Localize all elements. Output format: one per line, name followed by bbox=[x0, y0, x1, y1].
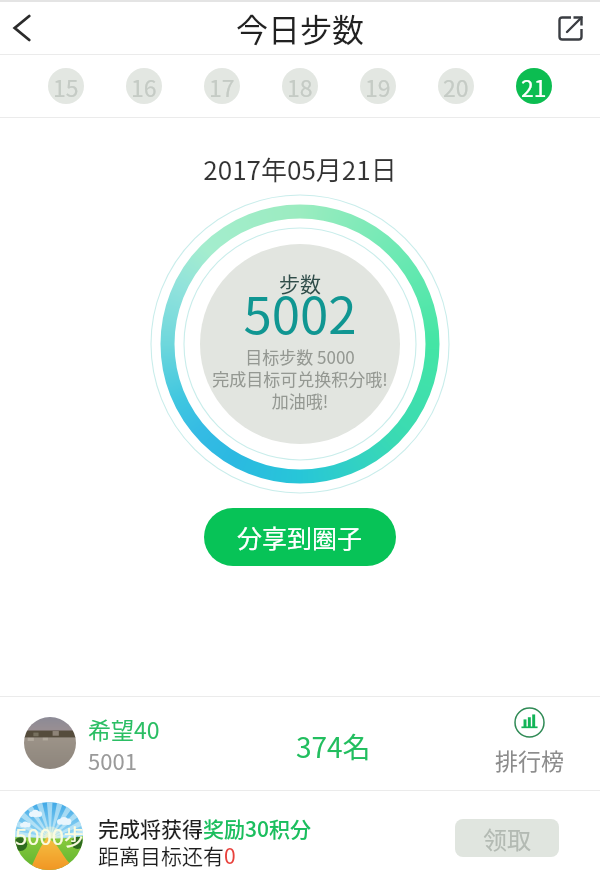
staticText: 2017年05月21日 bbox=[0, 150, 600, 188]
staticText: 5000步 bbox=[15, 819, 83, 851]
staticText: 距离目标还有0 bbox=[98, 840, 236, 870]
staticText: 领取 bbox=[483, 821, 531, 856]
staticText: 374名 bbox=[296, 726, 371, 767]
staticText: 19 bbox=[365, 70, 391, 103]
button[interactable]: 20 bbox=[438, 68, 474, 104]
button[interactable]: Share bbox=[543, 2, 597, 54]
button[interactable]: 19 bbox=[360, 68, 396, 104]
staticText: 排行榜 bbox=[495, 743, 564, 776]
staticText: 完成将获得奖励30积分 bbox=[98, 813, 311, 843]
button[interactable]: 18 bbox=[282, 68, 318, 104]
button[interactable]: 希望40 bbox=[0, 697, 600, 790]
staticText: 15 bbox=[53, 70, 79, 103]
button[interactable]: 15 bbox=[48, 68, 84, 104]
button[interactable]: 领取 bbox=[455, 819, 559, 857]
staticText: 今日步数 bbox=[236, 5, 365, 51]
staticText: 16 bbox=[131, 70, 157, 103]
staticText: 21 bbox=[521, 70, 547, 103]
button[interactable]: 分享到圈子 bbox=[204, 508, 396, 566]
staticText: 20 bbox=[443, 70, 469, 103]
staticText: 希望40 bbox=[88, 712, 160, 745]
staticText: 分享到圈子 bbox=[237, 519, 363, 555]
staticText: 17 bbox=[209, 70, 235, 103]
staticText: 5002 bbox=[140, 275, 460, 349]
button[interactable]: 16 bbox=[126, 68, 162, 104]
button[interactable]: Back bbox=[0, 2, 49, 54]
button[interactable]: 17 bbox=[204, 68, 240, 104]
button[interactable]: 21 bbox=[516, 68, 552, 104]
staticText: 5001 bbox=[88, 744, 137, 776]
staticText: 步数 bbox=[140, 268, 460, 298]
staticText: 18 bbox=[287, 70, 313, 103]
staticText: 目标步数 5000 完成目标可兑换积分哦! 加油哦! bbox=[140, 344, 460, 413]
